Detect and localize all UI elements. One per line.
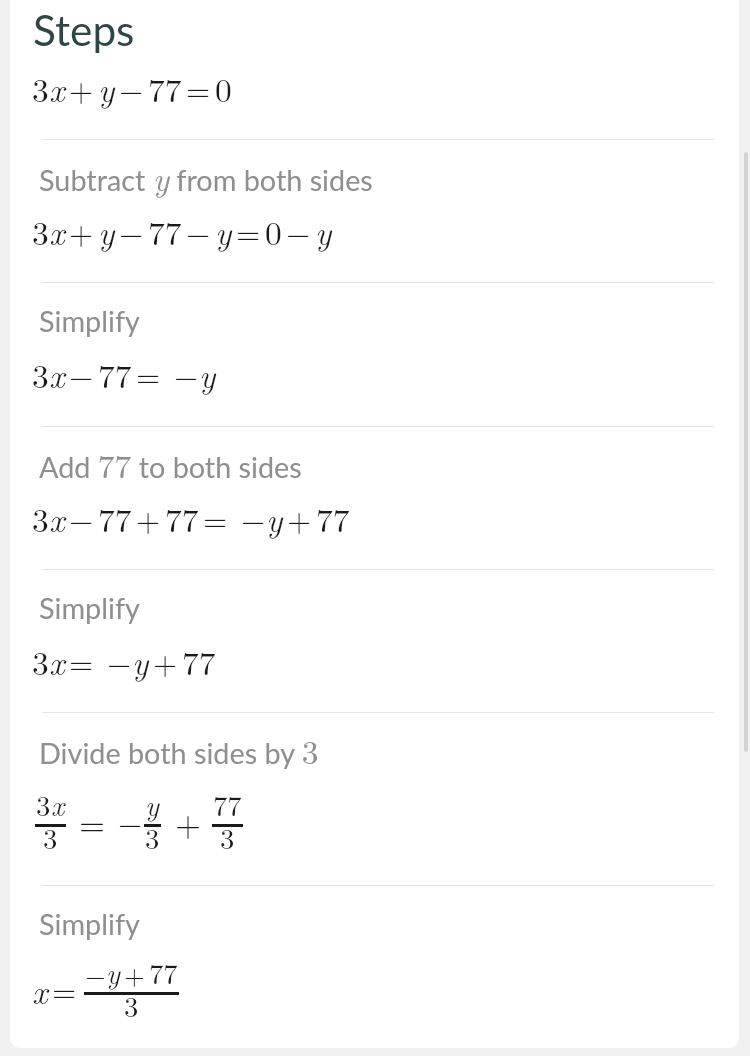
staticText: 77 [165,494,199,541]
staticText: 3 [145,817,160,858]
staticText: 77 [148,64,182,111]
staticText: = [52,967,77,1011]
staticText: + [287,496,312,540]
staticText: − [85,955,106,993]
staticText: Add 77 to both sides [39,440,302,487]
staticText: 77 [213,784,242,825]
staticText: 0 [265,207,282,254]
staticText: = [79,798,106,845]
staticText: = [186,66,211,110]
staticText: 3 [220,817,235,858]
staticText: Simplify [39,907,140,942]
staticText: 3 [32,350,49,397]
staticText: x [51,784,65,825]
staticText: 3 [36,784,51,825]
staticText: + [124,955,145,993]
staticText: x [49,494,65,541]
staticText: 0 [215,64,232,111]
staticText: 77 [182,637,216,684]
staticText: = [136,352,161,396]
staticText: 77 [148,207,182,254]
staticText: − [119,66,144,110]
staticText: 77 [316,494,350,541]
staticText: 77 [98,350,132,397]
staticText: y [106,952,120,993]
staticText: − [241,496,266,540]
staticText: = [236,209,261,253]
staticText: y [98,207,115,254]
staticText: y [98,64,115,111]
staticText: y [132,637,149,684]
staticText: + [175,798,202,845]
staticText: − [286,209,311,253]
staticText: Simplify [39,591,140,626]
staticText: Simplify [39,304,140,339]
staticText: Divide both sides by 3 [39,726,319,773]
staticText: − [174,352,199,396]
staticText: + [153,639,178,683]
staticText: + [69,66,94,110]
staticText: + [69,209,94,253]
staticText: − [186,209,211,253]
staticText: − [107,639,132,683]
staticText: x [49,637,65,684]
staticText: 3 [43,817,58,858]
staticText: y [199,350,216,397]
staticText: − [69,496,94,540]
staticText: 3 [32,494,49,541]
staticText: 3 [32,637,49,684]
staticText: y [315,207,332,254]
staticText: − [119,209,144,253]
staticText: 3 [124,985,139,1026]
staticText: 3 [32,207,49,254]
staticText: + [136,496,161,540]
staticText: − [69,352,94,396]
staticText: x [32,966,48,1013]
staticText: Steps [33,4,135,55]
staticText: Subtract y from both sides [39,153,373,200]
staticText: − [118,799,143,843]
staticText: = [203,496,228,540]
staticText: x [49,64,65,111]
staticText: y [266,494,283,541]
staticText: 77 [149,952,178,993]
staticText: 77 [98,494,132,541]
staticText: y [215,207,232,254]
staticText: y [145,784,159,825]
staticText: x [49,207,65,254]
staticText: x [49,350,65,397]
staticText: 3 [32,64,49,111]
staticText: = [69,639,94,683]
